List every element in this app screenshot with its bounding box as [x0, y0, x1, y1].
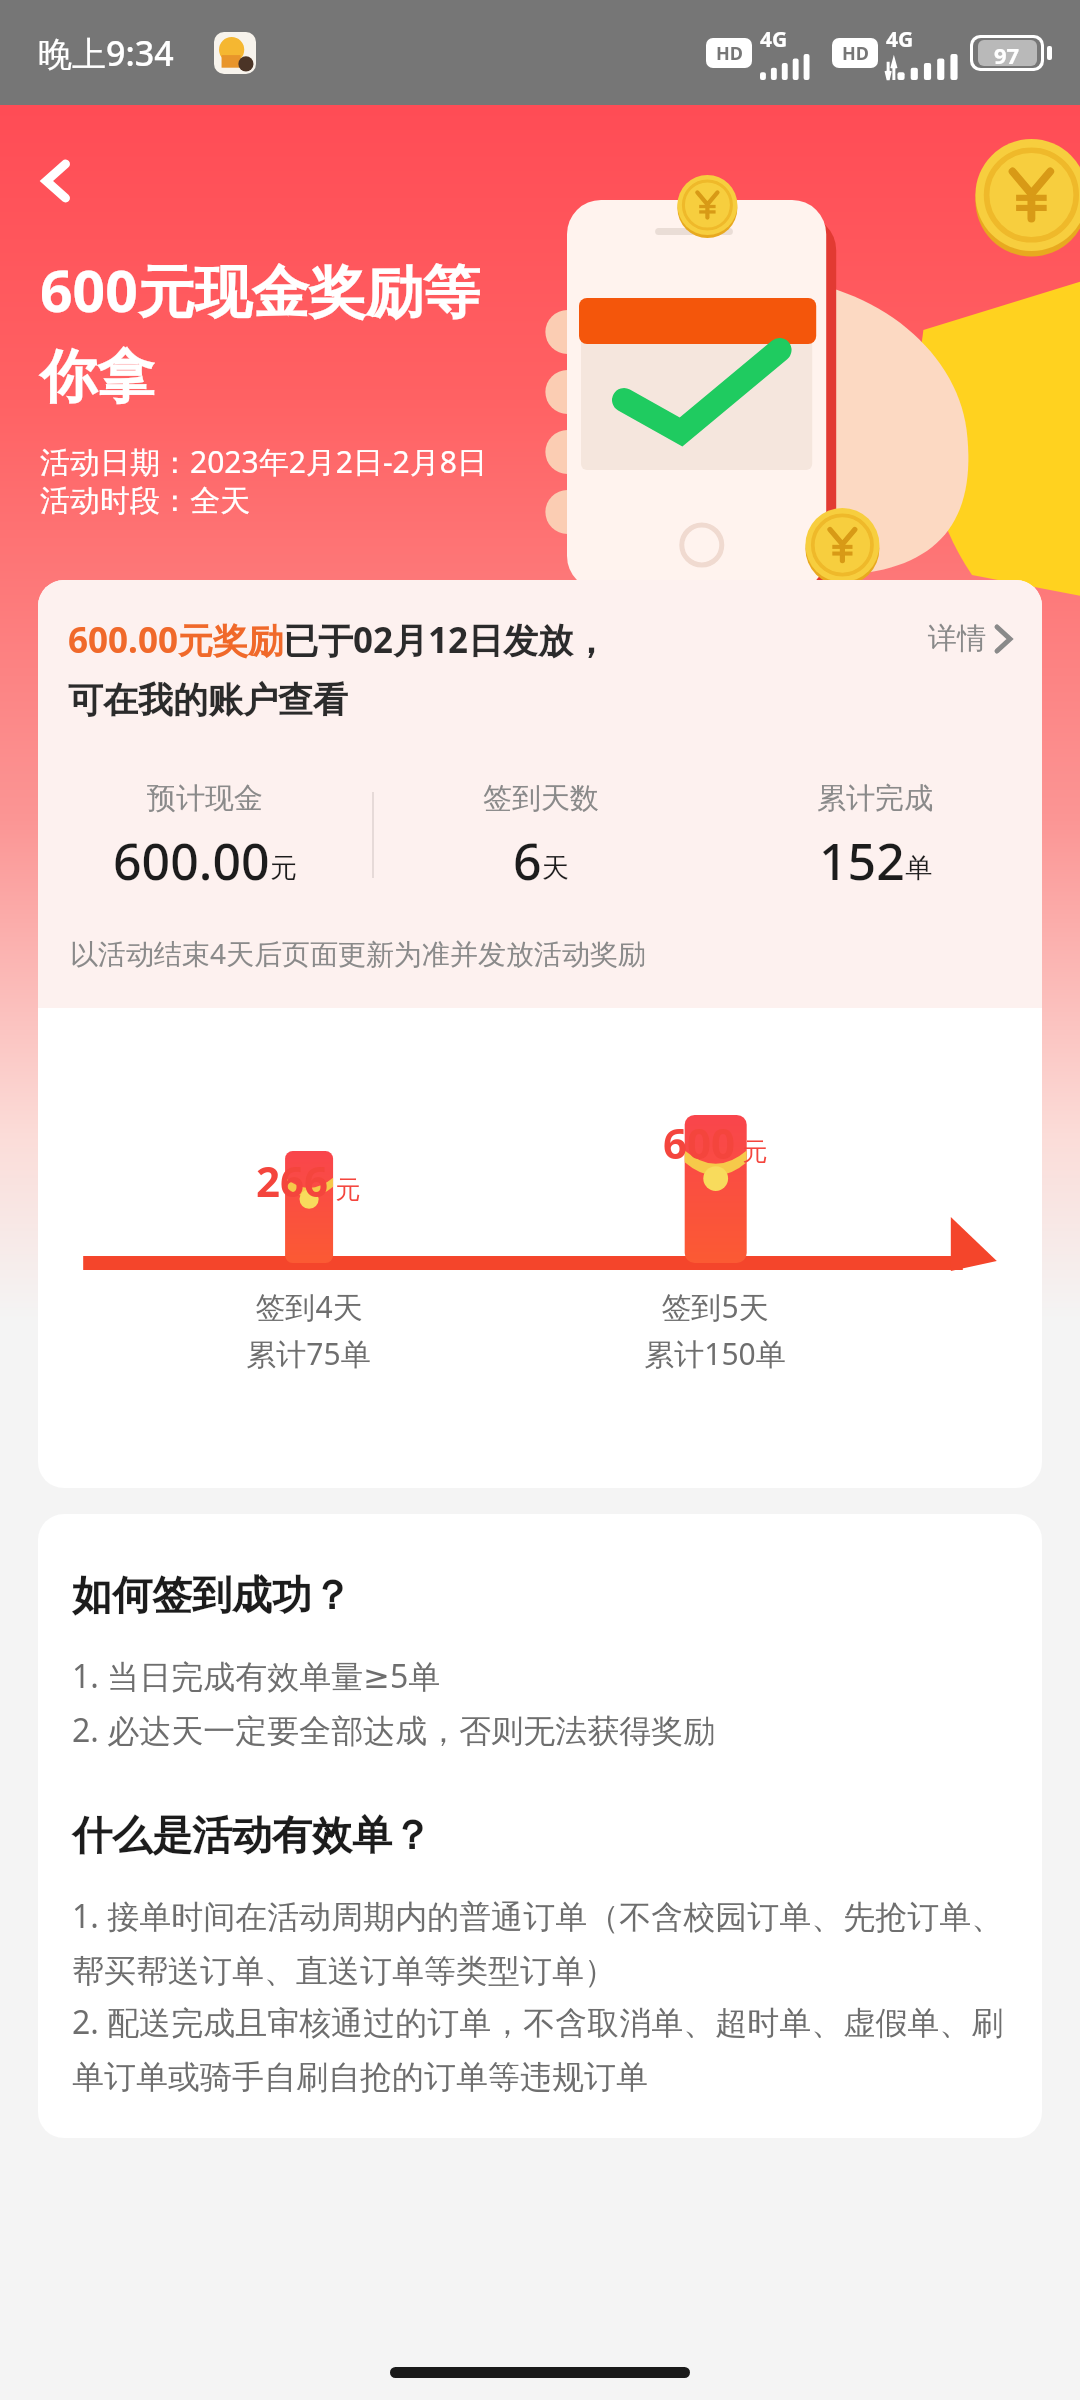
staticText: 1. 当日完成有效单量≥5单 [72, 1654, 441, 1698]
staticText: 152 [819, 827, 905, 890]
staticText: 266 [256, 1152, 329, 1209]
staticText: 元 [329, 1171, 361, 1205]
staticText: 活动日期：2023年2月2日-2月8日 [40, 441, 487, 482]
staticText: 1. 接单时间在活动周期内的普通订单（不含校园订单、先抢订单、帮买帮送订单、直送… [72, 1894, 1014, 1992]
staticText: 4G [760, 25, 788, 54]
staticText: 2. 必达天一定要全部达成，否则无法获得奖励 [72, 1708, 716, 1752]
staticText: 600 [663, 1114, 736, 1171]
staticText: 详情 [928, 620, 986, 657]
staticText: 以活动结束4天后页面更新为准并发放活动奖励 [70, 934, 647, 972]
staticText: 4G [886, 25, 914, 54]
staticText: 已于02月12日发放， [283, 616, 609, 664]
staticText: 预计现金 [147, 780, 263, 817]
staticText: 元 [736, 1133, 768, 1167]
staticText: HD [842, 41, 869, 66]
staticText: 累计完成 [817, 780, 933, 817]
staticText: 如何签到成功？ [72, 1570, 352, 1620]
staticText: 活动时段：全天 [40, 482, 250, 520]
staticText: 元 [270, 851, 297, 885]
staticText: 2. 配送完成且审核通过的订单，不含取消单、超时单、虚假单、刷单订单或骑手自刷自… [72, 2000, 1014, 2098]
button[interactable]: 详情 [928, 620, 1012, 657]
staticText: 97 [994, 40, 1020, 66]
staticText: 什么是活动有效单？ [72, 1810, 432, 1860]
staticText: 600.00元奖励 [68, 616, 283, 664]
staticText: 晚上9:34 [38, 30, 174, 76]
staticText: 可在我的账户查看 [68, 678, 348, 722]
staticText: 签到5天 [661, 1286, 769, 1327]
staticText: 累计150单 [644, 1333, 786, 1374]
staticText: 天 [542, 851, 569, 885]
staticText: 单 [905, 851, 932, 885]
staticText: 600.00 [113, 827, 270, 890]
staticText: HD [716, 41, 743, 66]
staticText: 6 [513, 827, 542, 890]
staticText: 签到天数 [483, 780, 599, 817]
staticText: 600元现金奖励等 你拿 [40, 251, 480, 413]
staticText: 累计75单 [246, 1333, 371, 1374]
button[interactable]: Back [22, 145, 94, 217]
staticText: 签到4天 [255, 1286, 363, 1327]
